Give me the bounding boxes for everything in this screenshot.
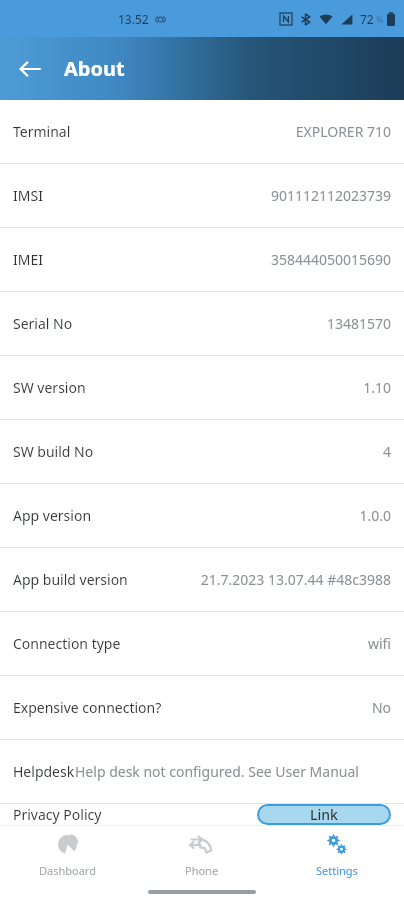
button[interactable]: App version bbox=[0, 484, 404, 547]
button[interactable]: Helpdesk bbox=[0, 740, 404, 803]
button[interactable]: Phone bbox=[134, 826, 269, 884]
staticText: % bbox=[376, 13, 384, 25]
button[interactable]: SW build No bbox=[0, 420, 404, 483]
staticText: Settings bbox=[316, 863, 358, 878]
staticText: IMEI bbox=[13, 250, 43, 269]
staticText: 21.7.2023 13.07.44 #48c3988 bbox=[200, 570, 391, 589]
staticText: SW build No bbox=[13, 442, 94, 461]
staticText: Link bbox=[310, 805, 338, 824]
button[interactable]: IMEI bbox=[0, 228, 404, 291]
staticText: Help desk not configured. See User Manua… bbox=[75, 762, 359, 781]
button[interactable]: IMSI bbox=[0, 164, 404, 227]
staticText: 901112112023739 bbox=[270, 186, 391, 205]
button[interactable]: SW version bbox=[0, 356, 404, 419]
button[interactable]: Settings bbox=[269, 826, 404, 884]
button[interactable]: Connection type bbox=[0, 612, 404, 675]
staticText: EXPLORER 710 bbox=[295, 122, 391, 141]
staticText: Phone bbox=[185, 863, 219, 878]
staticText: 72 bbox=[360, 11, 374, 27]
staticText: 1.10 bbox=[363, 378, 391, 397]
staticText: 13.52 bbox=[118, 11, 149, 27]
staticText: 1.0.0 bbox=[359, 506, 391, 525]
staticText: IMSI bbox=[13, 186, 43, 205]
button[interactable]: Link bbox=[257, 804, 391, 825]
staticText: Expensive connection? bbox=[13, 698, 162, 717]
staticText: 358444050015690 bbox=[270, 250, 391, 269]
staticText: 4 bbox=[382, 442, 391, 461]
staticText: Connection type bbox=[13, 634, 121, 653]
staticText: wifi bbox=[367, 634, 391, 653]
button[interactable]: App build version bbox=[0, 548, 404, 611]
button[interactable]: Privacy Policy bbox=[0, 804, 404, 825]
button[interactable]: Dashboard bbox=[0, 826, 134, 884]
staticText: Serial No bbox=[13, 314, 73, 333]
staticText: About bbox=[64, 55, 125, 82]
button[interactable]: Serial No bbox=[0, 292, 404, 355]
staticText: No bbox=[371, 698, 391, 717]
staticText: Privacy Policy bbox=[13, 805, 102, 824]
staticText: 13481570 bbox=[326, 314, 391, 333]
button[interactable]: Expensive connection? bbox=[0, 676, 404, 739]
button[interactable]: Back bbox=[8, 47, 52, 91]
staticText: Helpdesk bbox=[13, 762, 75, 781]
staticText: Dashboard bbox=[39, 863, 96, 878]
staticText: Terminal bbox=[13, 122, 71, 141]
button[interactable]: Terminal bbox=[0, 100, 404, 163]
staticText: SW version bbox=[13, 378, 86, 397]
staticText: App version bbox=[13, 506, 92, 525]
staticText: App build version bbox=[13, 570, 128, 589]
